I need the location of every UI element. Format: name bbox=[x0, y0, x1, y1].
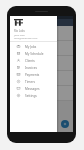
button[interactable]: Invoices bbox=[10, 64, 57, 71]
staticText: Rio Labs bbox=[14, 29, 25, 33]
staticText: Payments bbox=[25, 73, 40, 77]
button[interactable]: Messages bbox=[10, 85, 57, 92]
staticText: John Doe bbox=[14, 33, 25, 36]
staticText: My Jobs bbox=[19, 21, 31, 25]
staticText: My Jobs bbox=[25, 45, 37, 49]
staticText: My Schedule bbox=[25, 52, 44, 56]
button[interactable]: Payments bbox=[10, 71, 57, 78]
button[interactable]: My Jobs bbox=[10, 43, 57, 50]
staticText: john@example.com bbox=[14, 36, 38, 39]
button[interactable]: Clients bbox=[10, 57, 57, 64]
button[interactable]: My Schedule bbox=[10, 50, 57, 57]
staticText: Settings bbox=[25, 94, 37, 98]
staticText: Timers bbox=[25, 80, 35, 84]
button[interactable]: Add job bbox=[61, 120, 69, 128]
staticText: Invoices bbox=[25, 66, 37, 70]
button[interactable]: Settings bbox=[10, 92, 57, 99]
button[interactable]: Rio Labs bbox=[10, 16, 57, 132]
staticText: Clients bbox=[25, 59, 35, 63]
staticText: Messages bbox=[25, 87, 40, 91]
button[interactable]: Timers bbox=[10, 78, 57, 85]
